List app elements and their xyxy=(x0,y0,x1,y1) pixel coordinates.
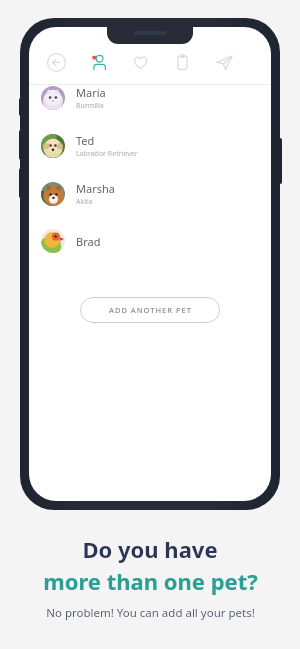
button[interactable]: ADD ANOTHER PET xyxy=(80,297,220,323)
button[interactable]: Brad xyxy=(29,229,271,277)
button[interactable]: Send xyxy=(208,46,240,78)
button[interactable]: Records xyxy=(166,46,198,78)
button[interactable]: Favourites xyxy=(124,46,156,78)
button[interactable]: Pets xyxy=(82,46,114,78)
staticText: Marsha xyxy=(76,181,115,196)
staticText: Brad xyxy=(76,234,101,249)
staticText: Ted xyxy=(76,133,95,148)
button[interactable]: Back xyxy=(40,46,72,78)
staticText: Labrador Retriever xyxy=(76,149,138,159)
button[interactable]: Ted xyxy=(29,133,271,181)
button[interactable]: Maria xyxy=(29,85,271,133)
staticText: Burmilla xyxy=(76,101,104,111)
button[interactable]: Marsha xyxy=(29,181,271,229)
staticText: Akita xyxy=(76,197,93,207)
staticText: ADD ANOTHER PET xyxy=(109,305,192,315)
staticText: Do you have xyxy=(82,534,218,564)
staticText: Maria xyxy=(76,85,106,100)
staticText: more than one pet? xyxy=(43,566,258,596)
staticText: No problem! You can add all your pets! xyxy=(46,605,255,621)
